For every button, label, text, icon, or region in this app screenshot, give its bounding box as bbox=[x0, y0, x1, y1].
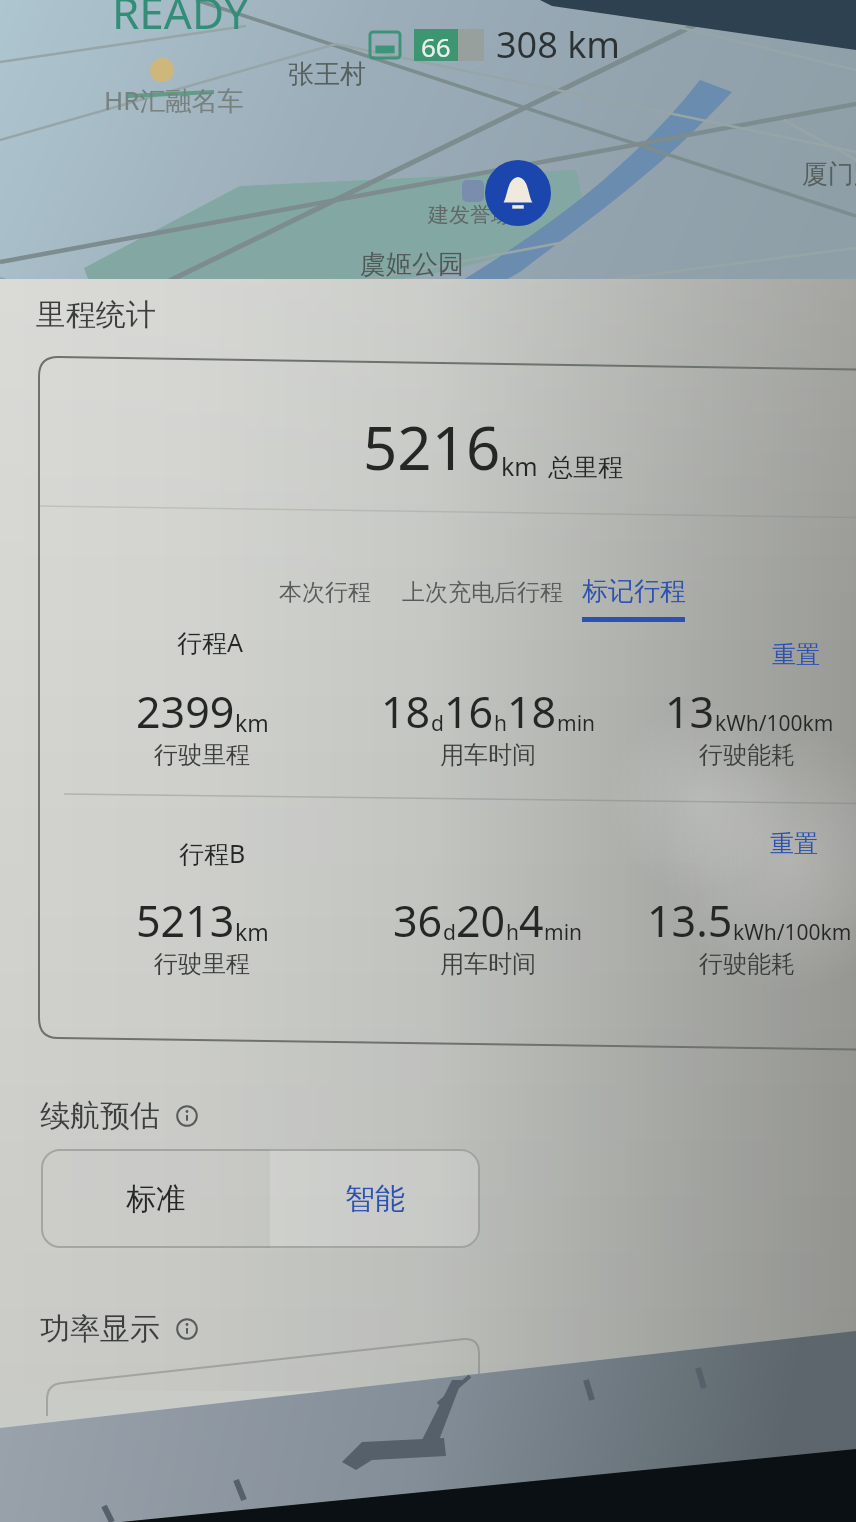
staticText: km bbox=[235, 707, 269, 738]
staticText: 13 bbox=[665, 682, 715, 741]
staticText: 重置 bbox=[772, 640, 820, 670]
button[interactable]: 上次充电后行程 bbox=[402, 578, 563, 607]
staticText: 66 bbox=[421, 29, 451, 61]
staticText: 功率显示 bbox=[40, 1310, 160, 1348]
staticText: h bbox=[494, 709, 507, 738]
staticText: 里程统计 bbox=[36, 296, 156, 334]
staticText: 用车时间 bbox=[288, 949, 688, 979]
staticText: 2399 bbox=[136, 682, 235, 741]
staticText: 行驶能耗 bbox=[547, 740, 856, 770]
staticText: READY bbox=[112, 0, 249, 42]
button[interactable]: Notifications bbox=[485, 160, 551, 226]
staticText: 建发誉璟湾 bbox=[428, 202, 533, 228]
staticText: 行程A bbox=[177, 625, 243, 659]
staticText: min bbox=[544, 918, 583, 947]
staticText: 张王村 bbox=[288, 58, 366, 91]
staticText: HR汇融名车 bbox=[104, 82, 244, 118]
staticText: 行驶里程 bbox=[2, 740, 402, 770]
button[interactable]: 标准 bbox=[41, 1149, 270, 1248]
staticText: 36 bbox=[393, 891, 443, 950]
staticText: kWh/100km bbox=[715, 709, 834, 738]
staticText: d bbox=[431, 709, 444, 738]
staticText: 4 bbox=[519, 891, 544, 950]
staticText: 行驶能耗 bbox=[547, 949, 856, 979]
staticText: 18 bbox=[381, 682, 431, 741]
staticText: 续航预估 bbox=[40, 1097, 160, 1135]
staticText: 行程B bbox=[179, 836, 246, 870]
button[interactable]: Range estimate info bbox=[40, 1097, 198, 1135]
staticText: km bbox=[501, 449, 538, 483]
staticText: 308 km bbox=[496, 20, 621, 69]
staticText: 本次行程 bbox=[279, 578, 371, 607]
staticText: d bbox=[443, 918, 456, 947]
button[interactable]: Power display info bbox=[40, 1310, 198, 1348]
staticText: 行驶里程 bbox=[2, 949, 402, 979]
staticText: 总里程 bbox=[548, 452, 623, 483]
button[interactable]: 标记行程 bbox=[582, 575, 686, 622]
staticText: 上次充电后行程 bbox=[402, 578, 563, 607]
staticText: 标记行程 bbox=[582, 575, 686, 608]
staticText: 18 bbox=[507, 682, 557, 741]
button[interactable]: 重置 bbox=[760, 632, 832, 678]
staticText: 标准 bbox=[126, 1180, 186, 1218]
staticText: 5216 bbox=[363, 406, 501, 488]
staticText: 虞姬公园 bbox=[360, 248, 464, 281]
staticText: kWh/100km bbox=[733, 918, 852, 947]
staticText: 16 bbox=[444, 682, 494, 741]
staticText: km bbox=[235, 916, 269, 947]
staticText: min bbox=[557, 709, 596, 738]
staticText: 重置 bbox=[770, 829, 818, 859]
button[interactable]: 重置 bbox=[758, 821, 830, 867]
staticText: 智能 bbox=[345, 1180, 405, 1218]
button[interactable]: 本次行程 bbox=[279, 578, 371, 607]
staticText: 13.5 bbox=[647, 891, 733, 950]
staticText: 20 bbox=[456, 891, 506, 950]
staticText: h bbox=[506, 918, 519, 947]
staticText: 5213 bbox=[136, 891, 235, 950]
button[interactable]: 智能 bbox=[270, 1149, 480, 1248]
staticText: 用车时间 bbox=[288, 740, 688, 770]
staticText: 厦门路 bbox=[802, 158, 856, 191]
